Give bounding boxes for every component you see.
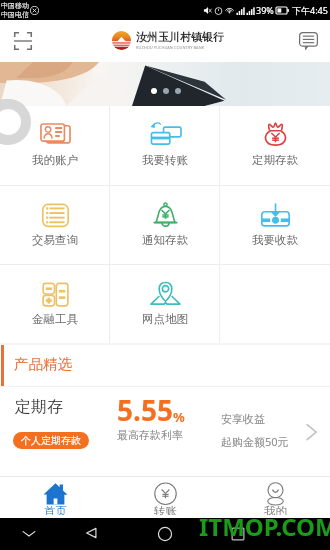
button[interactable]: 我的 [220, 477, 330, 518]
staticText: 我要转账 [142, 153, 188, 167]
staticText: 中国电信 [1, 10, 29, 19]
button[interactable]: 定期存款 [220, 106, 330, 185]
staticText: 我的账户 [32, 153, 78, 167]
staticText: 汝州玉川村镇银行 [136, 30, 224, 44]
staticText: 交易查询 [32, 233, 78, 247]
button[interactable]: 我的账户 [0, 106, 110, 185]
button[interactable]: 网点地图 [110, 265, 220, 343]
button[interactable]: 通知存款 [110, 186, 220, 264]
staticText: 起购金额50元 [221, 434, 289, 449]
staticText: 定期存款 [252, 153, 298, 167]
staticText: 我要收款 [252, 233, 298, 247]
button[interactable]: Home [157, 526, 173, 542]
staticText: 39% [256, 4, 274, 16]
button[interactable]: Hide keyboard [22, 526, 36, 540]
staticText: 金融工具 [32, 312, 78, 326]
button[interactable]: 首页 [0, 477, 110, 518]
button[interactable]: Messages [293, 26, 323, 56]
button[interactable]: 定期存 [0, 387, 330, 476]
button[interactable]: Back [85, 526, 99, 540]
button[interactable]: Scan QR code [8, 26, 38, 56]
button[interactable]: 交易查询 [0, 186, 110, 264]
button[interactable]: Recent apps [231, 527, 245, 541]
staticText: ITMOP.COM [199, 510, 330, 543]
staticText: RUZHOU YUCHUAN COUNTRY BANK [136, 45, 205, 50]
staticText: 网点地图 [142, 312, 188, 326]
button[interactable]: 我要收款 [220, 186, 330, 264]
staticText: 首页 [44, 504, 67, 515]
button[interactable]: 我要转账 [110, 106, 220, 185]
staticText: 中国移动 [1, 1, 29, 10]
staticText: % [173, 408, 185, 426]
staticText: 通知存款 [142, 233, 188, 247]
staticText: 最高存款利率 [117, 428, 183, 442]
staticText: 个人定期存款 [21, 434, 81, 447]
staticText: 下午4:45 [292, 4, 328, 16]
staticText: 5.55 [117, 391, 173, 429]
button[interactable]: 转账 [110, 477, 220, 518]
staticText: 产品精选 [14, 355, 72, 373]
staticText: 我的 [264, 504, 287, 515]
button[interactable]: 金融工具 [0, 265, 110, 343]
staticText: 转账 [154, 504, 177, 515]
staticText: 安享收益 [221, 412, 265, 426]
staticText: 定期存 [15, 397, 63, 417]
